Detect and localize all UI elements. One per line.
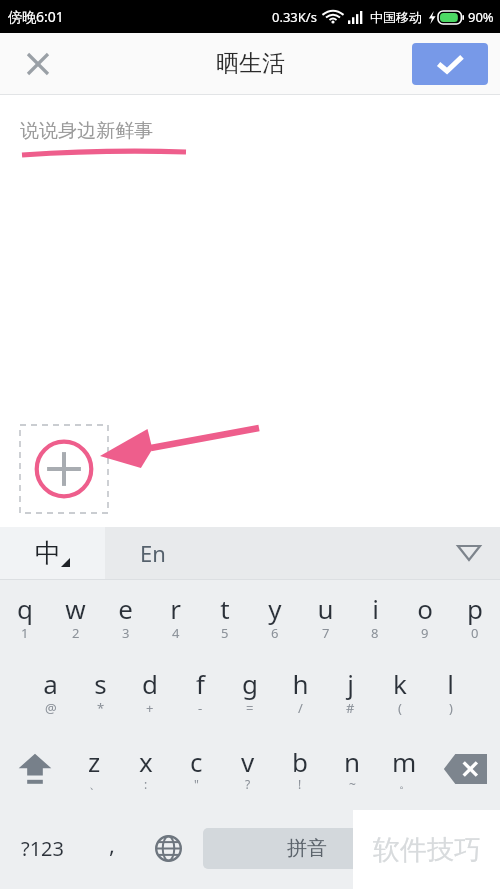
- button[interactable]: u: [300, 580, 350, 655]
- staticText: 3: [122, 624, 130, 642]
- button[interactable]: e: [100, 580, 150, 655]
- button[interactable]: t: [200, 580, 250, 655]
- button[interactable]: Input language: [0, 527, 105, 579]
- staticText: l: [447, 666, 454, 701]
- button[interactable]: Backspace: [430, 730, 500, 808]
- button[interactable]: k: [375, 655, 425, 730]
- staticText: 90%: [468, 8, 494, 26]
- staticText: i: [372, 591, 379, 626]
- staticText: 1: [21, 624, 29, 642]
- staticText: o: [417, 591, 433, 626]
- staticText: 。: [399, 776, 411, 791]
- button[interactable]: En: [105, 527, 500, 579]
- staticText: s: [94, 666, 107, 701]
- button[interactable]: f: [175, 655, 225, 730]
- staticText: p: [467, 591, 483, 626]
- button[interactable]: ?123: [0, 808, 84, 888]
- staticText: 软件技巧: [373, 833, 481, 867]
- button[interactable]: j: [325, 655, 375, 730]
- staticText: En: [140, 538, 166, 568]
- staticText: 0.33K/s: [272, 8, 317, 26]
- staticText: 8: [371, 624, 379, 642]
- button[interactable]: r: [150, 580, 200, 655]
- button[interactable]: Add photo: [20, 425, 108, 513]
- button[interactable]: h: [275, 655, 325, 730]
- button[interactable]: Hide keyboard: [452, 536, 486, 570]
- staticText: e: [118, 591, 133, 626]
- button[interactable]: c: [171, 730, 222, 808]
- staticText: c: [190, 744, 203, 779]
- staticText: 9: [421, 624, 429, 642]
- button[interactable]: m: [378, 730, 430, 808]
- staticText: 中: [35, 537, 61, 570]
- button[interactable]: a: [25, 655, 75, 730]
- staticText: y: [268, 591, 282, 626]
- staticText: ?123: [21, 835, 64, 862]
- button[interactable]: i: [350, 580, 400, 655]
- button[interactable]: d: [125, 655, 175, 730]
- staticText: a: [43, 666, 58, 701]
- staticText: 6: [271, 624, 279, 642]
- staticText: 、: [89, 776, 101, 791]
- staticText: q: [17, 591, 33, 626]
- button[interactable]: o: [400, 580, 450, 655]
- staticText: 傍晚6:01: [8, 7, 64, 26]
- staticText: 说说身边新鲜事: [20, 119, 153, 143]
- staticText: @: [45, 699, 57, 717]
- staticText: 2: [72, 624, 80, 642]
- staticText: b: [292, 744, 308, 779]
- button[interactable]: g: [225, 655, 275, 730]
- staticText: 7: [322, 624, 330, 642]
- staticText: #: [346, 699, 355, 717]
- button[interactable]: n: [326, 730, 378, 808]
- staticText: w: [65, 591, 86, 626]
- staticText: -: [198, 699, 203, 717]
- staticText: n: [344, 744, 361, 779]
- button[interactable]: Shift: [0, 730, 69, 808]
- staticText: t: [220, 591, 230, 626]
- button[interactable]: Close: [16, 42, 60, 86]
- staticText: m: [392, 744, 417, 779]
- staticText: !: [298, 776, 302, 792]
- staticText: g: [242, 666, 258, 701]
- staticText: f: [196, 666, 205, 701]
- staticText: r: [170, 591, 181, 626]
- staticText: :: [144, 776, 148, 792]
- staticText: 4: [172, 624, 180, 642]
- staticText: x: [139, 744, 153, 779]
- button[interactable]: 拼音: [203, 828, 410, 869]
- staticText: ,: [109, 829, 115, 859]
- staticText: d: [142, 666, 158, 701]
- button[interactable]: z: [69, 730, 120, 808]
- button[interactable]: v: [222, 730, 274, 808]
- staticText: u: [317, 591, 334, 626]
- staticText: 晒生活: [216, 49, 285, 78]
- staticText: 5: [221, 624, 229, 642]
- staticText: z: [88, 744, 101, 779]
- button[interactable]: s: [75, 655, 125, 730]
- staticText: (: [398, 699, 402, 717]
- staticText: ": [194, 776, 199, 792]
- button[interactable]: [416, 808, 500, 888]
- button[interactable]: b: [274, 730, 326, 808]
- button[interactable]: y: [250, 580, 300, 655]
- button[interactable]: l: [425, 655, 475, 730]
- staticText: /: [298, 699, 303, 717]
- staticText: h: [292, 666, 309, 701]
- staticText: =: [246, 699, 254, 717]
- staticText: 拼音: [287, 836, 327, 861]
- staticText: v: [241, 744, 255, 779]
- staticText: 中国移动: [370, 9, 422, 25]
- staticText: j: [347, 666, 354, 701]
- button[interactable]: Change input method: [139, 808, 197, 888]
- button[interactable]: x: [120, 730, 171, 808]
- button[interactable]: ,: [84, 808, 139, 888]
- staticText: ): [449, 699, 453, 717]
- button[interactable]: q: [0, 580, 50, 655]
- button[interactable]: w: [50, 580, 100, 655]
- staticText: ?: [245, 776, 251, 792]
- button[interactable]: Confirm: [412, 43, 488, 85]
- button[interactable]: p: [450, 580, 500, 655]
- staticText: *: [97, 699, 105, 717]
- staticText: +: [146, 699, 154, 717]
